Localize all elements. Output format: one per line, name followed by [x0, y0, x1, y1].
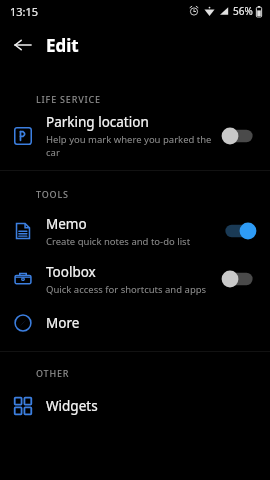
button[interactable]: Memo	[0, 207, 270, 255]
button[interactable]: More	[0, 303, 270, 343]
button[interactable]: Toggle on	[222, 221, 256, 241]
button[interactable]: Toggle off	[222, 269, 256, 289]
staticText: Toolbox	[46, 263, 96, 281]
button[interactable]: Back	[0, 22, 46, 68]
button[interactable]: Toggle off	[222, 126, 256, 146]
staticText: Parking location	[46, 113, 149, 131]
staticText: LIFE SERVICE	[36, 93, 101, 105]
staticText: Memo	[46, 215, 87, 233]
staticText: 13:15	[10, 4, 39, 19]
staticText: Quick access for shortcuts and apps	[46, 283, 207, 296]
button[interactable]: Parking location	[0, 112, 270, 160]
staticText: Edit	[46, 34, 79, 57]
button[interactable]: Toolbox	[0, 255, 270, 303]
staticText: Create quick notes and to-do list	[46, 235, 191, 248]
staticText: OTHER	[36, 367, 70, 379]
button[interactable]: Widgets	[0, 386, 270, 426]
staticText: Widgets	[46, 397, 98, 415]
staticText: 56%	[233, 4, 253, 18]
staticText: TOOLS	[36, 188, 69, 200]
staticText: More	[46, 314, 80, 332]
staticText: Help you mark where you parked the car	[46, 133, 222, 159]
